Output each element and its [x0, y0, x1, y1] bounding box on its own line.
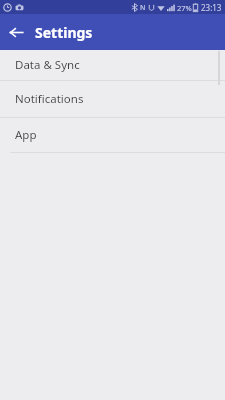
- staticText: Settings: [35, 23, 93, 42]
- button[interactable]: App: [0, 118, 225, 152]
- staticText: N: [140, 3, 146, 13]
- staticText: App: [15, 127, 37, 143]
- staticText: Data & Sync: [15, 57, 80, 73]
- staticText: 27%: [177, 3, 192, 13]
- button[interactable]: Back: [0, 16, 32, 48]
- staticText: 23:13: [201, 2, 222, 13]
- staticText: Notifications: [15, 91, 84, 107]
- button[interactable]: Data & Sync: [0, 50, 225, 80]
- button[interactable]: Notifications: [0, 81, 225, 117]
